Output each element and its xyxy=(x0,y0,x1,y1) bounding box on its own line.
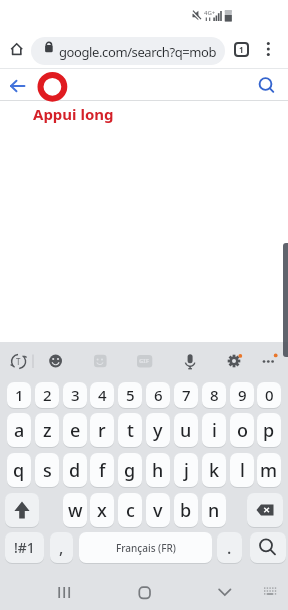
staticText: p xyxy=(263,418,275,443)
staticText: 5 xyxy=(126,385,135,405)
button[interactable]: b xyxy=(174,493,198,527)
button[interactable]: p xyxy=(257,413,281,447)
button[interactable]: 8 xyxy=(202,382,226,408)
button[interactable]: w xyxy=(63,493,87,527)
button[interactable]: t xyxy=(118,413,142,447)
button[interactable]: m xyxy=(257,453,281,487)
staticText: u xyxy=(180,418,192,443)
button[interactable]: 0 xyxy=(257,382,281,408)
staticText: 0 xyxy=(265,385,274,405)
staticText: k xyxy=(209,458,220,483)
button[interactable]: d xyxy=(63,453,87,487)
button[interactable] xyxy=(283,243,288,357)
staticText: 9 xyxy=(238,385,247,405)
button[interactable]: google.com/search?q=mob xyxy=(31,37,225,65)
button[interactable] xyxy=(50,582,78,606)
button[interactable]: 2 xyxy=(35,382,59,408)
button[interactable]: h xyxy=(146,453,170,487)
button[interactable] xyxy=(5,493,39,527)
button[interactable] xyxy=(258,582,282,606)
button[interactable] xyxy=(44,350,68,374)
staticText: e xyxy=(70,418,81,443)
staticText: GIF xyxy=(139,357,149,365)
staticText: Appui long xyxy=(33,104,114,124)
button[interactable] xyxy=(247,493,283,527)
staticText: t xyxy=(127,418,134,443)
button[interactable]: 3 xyxy=(63,382,87,408)
button[interactable]: s xyxy=(35,453,59,487)
staticText: h xyxy=(152,458,164,483)
button[interactable]: 1 xyxy=(234,42,249,57)
staticText: q xyxy=(13,458,25,483)
staticText: 1 xyxy=(239,44,244,55)
button[interactable] xyxy=(8,41,26,58)
button[interactable]: o xyxy=(230,413,254,447)
button[interactable]: 5 xyxy=(118,382,142,408)
staticText: g xyxy=(124,458,136,483)
staticText: d xyxy=(69,458,81,483)
staticText: z xyxy=(43,418,52,443)
button[interactable]: r xyxy=(90,413,114,447)
staticText: . xyxy=(227,537,232,559)
staticText: b xyxy=(180,498,192,523)
button[interactable] xyxy=(250,532,286,563)
button[interactable]: !#1 xyxy=(5,532,44,563)
staticText: i xyxy=(212,418,217,443)
button[interactable]: f xyxy=(90,453,114,487)
staticText: v xyxy=(153,498,163,523)
button[interactable]: e xyxy=(63,413,87,447)
button[interactable] xyxy=(6,76,28,96)
staticText: c xyxy=(126,498,135,523)
staticText: l xyxy=(240,458,245,483)
button[interactable] xyxy=(256,74,278,96)
staticText: y xyxy=(153,418,163,443)
staticText: a xyxy=(14,418,25,443)
button[interactable] xyxy=(132,582,158,606)
button[interactable]: 6 xyxy=(146,382,170,408)
button[interactable]: 4 xyxy=(90,382,114,408)
button[interactable]: z xyxy=(35,413,59,447)
staticText: j xyxy=(184,458,189,483)
button[interactable]: n xyxy=(202,493,226,527)
staticText: 6 xyxy=(154,385,163,405)
staticText: 7 xyxy=(182,385,191,405)
staticText: w xyxy=(68,498,83,523)
button[interactable]: v xyxy=(146,493,170,527)
button[interactable]: u xyxy=(174,413,198,447)
button[interactable]: l xyxy=(230,453,254,487)
button[interactable] xyxy=(212,582,238,606)
staticText: 2 xyxy=(43,385,52,405)
button[interactable]: q xyxy=(7,453,31,487)
button[interactable] xyxy=(258,350,282,374)
button[interactable] xyxy=(178,350,202,374)
button[interactable]: 9 xyxy=(230,382,254,408)
staticText: 8 xyxy=(210,385,219,405)
button[interactable]: 7 xyxy=(174,382,198,408)
staticText: m xyxy=(260,458,278,483)
button[interactable]: k xyxy=(202,453,226,487)
staticText: r xyxy=(98,418,106,443)
staticText: 1 xyxy=(15,385,24,405)
staticText: 4G+ xyxy=(204,9,216,17)
button[interactable] xyxy=(222,350,246,374)
button[interactable]: a xyxy=(7,413,31,447)
button[interactable]: x xyxy=(90,493,114,527)
button[interactable] xyxy=(8,350,32,374)
staticText: x xyxy=(97,498,107,523)
staticText: !#1 xyxy=(14,538,35,557)
button[interactable]: c xyxy=(118,493,142,527)
button[interactable]: i xyxy=(202,413,226,447)
button[interactable] xyxy=(261,40,276,59)
button[interactable]: g xyxy=(118,453,142,487)
button[interactable]: 1 xyxy=(7,382,31,408)
button[interactable]: Français (FR) xyxy=(79,532,212,563)
button[interactable]: , xyxy=(50,532,73,563)
button[interactable]: j xyxy=(174,453,198,487)
staticText: T xyxy=(16,356,21,367)
staticText: google.com/search?q=mob xyxy=(59,43,217,61)
staticText: f xyxy=(99,458,106,483)
button[interactable]: y xyxy=(146,413,170,447)
staticText: Français (FR) xyxy=(116,541,176,555)
button[interactable]: . xyxy=(217,532,242,563)
staticText: o xyxy=(237,418,248,443)
